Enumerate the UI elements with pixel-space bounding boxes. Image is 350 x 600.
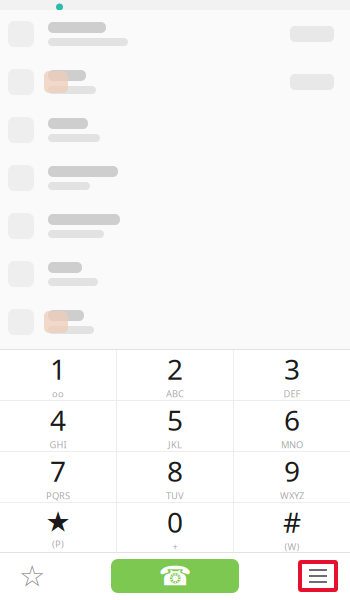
button[interactable]: ★ — [0, 503, 116, 553]
button[interactable]: 7 — [0, 452, 116, 502]
staticText: 9 — [284, 452, 300, 489]
button[interactable]: 2 — [117, 350, 233, 400]
button[interactable]: 9 — [234, 452, 350, 502]
staticText: oo — [52, 387, 64, 400]
staticText: (W) — [284, 540, 299, 553]
button[interactable] — [0, 250, 350, 298]
button[interactable]: 8 — [117, 452, 233, 502]
button[interactable]: 4 — [0, 401, 116, 451]
staticText: 4 — [50, 401, 66, 438]
staticText: 0 — [167, 503, 183, 540]
staticText: 8 — [167, 452, 183, 489]
staticText: 3 — [284, 350, 300, 387]
staticText: + — [172, 540, 177, 553]
button[interactable]: 1 — [0, 350, 116, 400]
staticText: ★ — [45, 506, 70, 538]
staticText: 1 — [50, 350, 66, 387]
staticText: ☆ — [19, 559, 45, 593]
button[interactable]: Favorites — [2, 552, 62, 600]
button[interactable] — [0, 298, 350, 346]
staticText: ☎ — [158, 561, 191, 591]
button[interactable] — [0, 106, 350, 154]
staticText: DEF — [283, 387, 300, 400]
staticText: WXYZ — [280, 489, 304, 502]
button[interactable] — [0, 202, 350, 250]
staticText: 6 — [284, 401, 300, 438]
button[interactable] — [0, 58, 350, 106]
staticText: 2 — [167, 350, 183, 387]
button[interactable] — [0, 10, 350, 58]
staticText: 7 — [50, 452, 66, 489]
staticText: ABC — [166, 387, 184, 400]
button[interactable]: 5 — [117, 401, 233, 451]
button[interactable] — [0, 154, 350, 202]
button[interactable]: Call — [111, 559, 239, 593]
button[interactable]: 0 — [117, 503, 233, 553]
staticText: JKL — [168, 438, 182, 451]
button[interactable]: # — [234, 503, 350, 553]
staticText: # — [283, 503, 301, 540]
staticText: (P) — [52, 538, 64, 550]
button[interactable]: 6 — [234, 401, 350, 451]
button[interactable]: Menu — [288, 552, 348, 600]
button[interactable]: 3 — [234, 350, 350, 400]
staticText: MNO — [281, 438, 303, 451]
staticText: TUV — [166, 489, 184, 502]
staticText: GHI — [49, 438, 66, 451]
staticText: 5 — [167, 401, 183, 438]
staticText: PQRS — [46, 489, 70, 502]
